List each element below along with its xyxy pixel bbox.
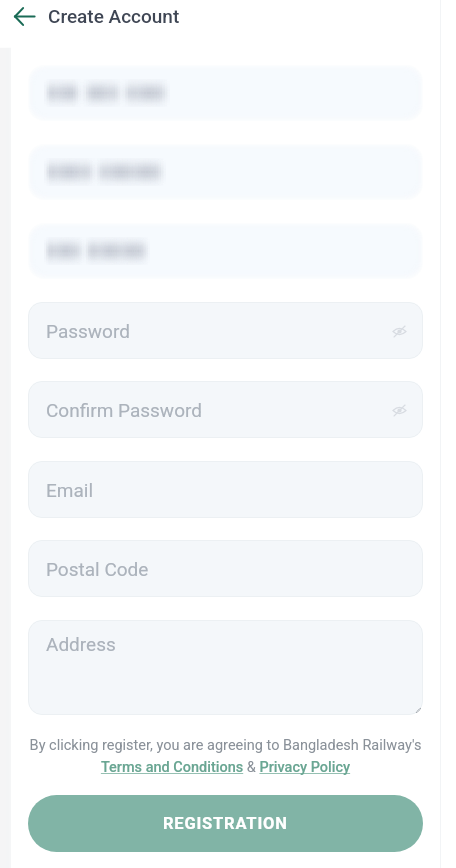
button[interactable]: Postal Code — [28, 540, 423, 597]
button[interactable] — [28, 144, 423, 200]
button[interactable]: Address — [28, 620, 423, 715]
staticText: Password — [46, 320, 130, 342]
button[interactable]: Back — [8, 0, 40, 32]
staticText: REGISTRATION — [163, 814, 288, 833]
button[interactable]: Password — [28, 302, 423, 359]
button[interactable]: REGISTRATION — [28, 795, 423, 852]
button[interactable]: Confirm Password — [28, 381, 423, 438]
button[interactable]: Terms and Conditions & Privacy Policy — [28, 759, 423, 776]
staticText: Email — [46, 479, 94, 501]
button[interactable] — [28, 65, 423, 121]
staticText: Address — [46, 633, 116, 655]
button[interactable]: Email — [28, 461, 423, 518]
staticText: By clicking register, you are agreeing t… — [28, 737, 423, 754]
staticText: Create Account — [48, 5, 180, 27]
button[interactable]: Toggle password visibility — [387, 319, 411, 343]
button[interactable]: Toggle password visibility — [387, 398, 411, 422]
staticText: Confirm Password — [46, 399, 202, 421]
button[interactable] — [28, 223, 423, 279]
staticText: Postal Code — [46, 558, 149, 580]
